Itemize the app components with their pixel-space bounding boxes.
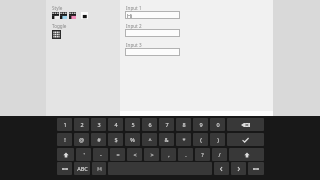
button[interactable]: /	[212, 148, 227, 161]
staticText: &	[164, 136, 169, 143]
staticText: /	[218, 151, 221, 158]
staticText: 5	[131, 121, 135, 128]
button[interactable]: Style 3	[69, 12, 76, 19]
button[interactable]: ABC	[74, 162, 90, 175]
button[interactable]: Right	[231, 162, 246, 175]
staticText: <	[133, 151, 137, 158]
staticText: 0	[216, 121, 220, 128]
staticText: .	[185, 151, 187, 158]
staticText: 7	[165, 121, 169, 128]
button[interactable]: >	[144, 148, 159, 161]
button[interactable]: 4	[108, 118, 123, 131]
button[interactable]: <	[127, 148, 142, 161]
button[interactable]: '	[76, 148, 91, 161]
staticText: Style	[52, 5, 63, 11]
staticText: Input 1	[126, 5, 142, 11]
staticText: 3	[97, 121, 101, 128]
staticText: 9	[199, 121, 203, 128]
button[interactable]: 7	[159, 118, 174, 131]
button[interactable]: Change language	[92, 162, 106, 175]
staticText: 6	[148, 121, 152, 128]
button[interactable]: Shift	[57, 148, 74, 161]
staticText: %	[130, 136, 135, 143]
staticText: (	[200, 136, 202, 143]
staticText: Input 2	[126, 23, 142, 29]
button[interactable]	[125, 48, 180, 56]
button[interactable]	[125, 29, 180, 37]
staticText: Input 3	[126, 42, 142, 48]
button[interactable]: 3	[91, 118, 106, 131]
staticText: 2	[80, 121, 84, 128]
button[interactable]: ?	[195, 148, 210, 161]
button[interactable]: =	[110, 148, 125, 161]
button[interactable]: 2	[74, 118, 89, 131]
staticText: ,	[168, 151, 170, 158]
button[interactable]: 5	[125, 118, 140, 131]
button[interactable]: 0	[210, 118, 225, 131]
staticText: Toggle	[52, 23, 67, 29]
staticText: )	[217, 136, 219, 143]
button[interactable]: 6	[142, 118, 157, 131]
button[interactable]: Keyboard settings	[57, 162, 72, 175]
button[interactable]: .	[178, 148, 193, 161]
button[interactable]: Enter	[227, 133, 264, 146]
button[interactable]: &	[159, 133, 174, 146]
button[interactable]: Toggle keyboard	[52, 30, 61, 39]
staticText: =	[116, 151, 120, 158]
button[interactable]: *	[176, 133, 191, 146]
button[interactable]: -	[93, 148, 108, 161]
staticText: 4	[114, 121, 118, 128]
button[interactable]: ^	[142, 133, 157, 146]
staticText: Hi	[127, 12, 133, 19]
staticText: ABC	[77, 165, 88, 172]
staticText: ?	[201, 151, 204, 158]
button[interactable]: Style 1	[52, 12, 59, 19]
button[interactable]: $	[108, 133, 123, 146]
button[interactable]: Style 4	[81, 12, 88, 19]
staticText: >	[150, 151, 154, 158]
staticText: !	[64, 136, 66, 143]
staticText: *	[182, 136, 186, 143]
staticText: ^	[148, 136, 152, 143]
button[interactable]: ,	[161, 148, 176, 161]
button[interactable]: %	[125, 133, 140, 146]
staticText: @	[79, 136, 84, 143]
button[interactable]: !	[57, 133, 72, 146]
button[interactable]: Left	[214, 162, 229, 175]
staticText: $	[114, 136, 118, 143]
button[interactable]: #	[91, 133, 106, 146]
staticText: 1	[63, 121, 67, 128]
button[interactable]: Hi	[125, 11, 180, 19]
button[interactable]: Hide keyboard	[248, 162, 264, 175]
button[interactable]: (	[193, 133, 208, 146]
button[interactable]: @	[74, 133, 89, 146]
button[interactable]: Backspace	[227, 118, 264, 131]
button[interactable]: 8	[176, 118, 191, 131]
button[interactable]: Style 2	[60, 12, 67, 19]
button[interactable]: 1	[57, 118, 72, 131]
staticText: '	[83, 151, 85, 158]
staticText: #	[97, 136, 101, 143]
button[interactable]: Shift	[229, 148, 264, 161]
staticText: 8	[182, 121, 186, 128]
button[interactable]: 9	[193, 118, 208, 131]
button[interactable]: )	[210, 133, 225, 146]
staticText: -	[100, 151, 102, 158]
